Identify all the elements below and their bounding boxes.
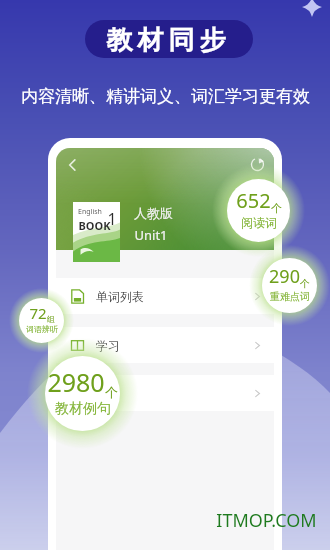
staticText: 290: [269, 264, 300, 289]
staticText: 学习: [96, 338, 120, 353]
staticText: 个: [105, 384, 118, 400]
staticText: 2980: [47, 365, 105, 399]
staticText: 652: [236, 187, 271, 214]
staticText: 单词列表: [96, 289, 144, 304]
staticText: Unit1: [134, 226, 168, 244]
staticText: BOOK: [78, 218, 111, 233]
staticText: 72: [29, 303, 47, 323]
button[interactable]: 单词列表: [70, 278, 262, 314]
button[interactable]: Refresh: [250, 157, 265, 172]
button[interactable]: 2980: [27, 338, 138, 449]
staticText: 词语辨听: [26, 324, 58, 334]
button[interactable]: 教材同步: [85, 20, 253, 58]
staticText: 人教版: [134, 205, 173, 221]
button[interactable]: Back: [64, 157, 80, 173]
button[interactable]: 652: [212, 164, 305, 257]
button[interactable]: 290: [249, 245, 330, 326]
button[interactable]: 学习: [70, 327, 262, 363]
button[interactable]: 72: [9, 288, 74, 353]
staticText: 内容清晰、精讲词义、词汇学习更有效: [21, 86, 310, 107]
staticText: 个: [300, 277, 310, 290]
button[interactable]: [70, 375, 262, 411]
staticText: 教材同步: [104, 24, 228, 57]
staticText: English: [78, 207, 102, 217]
staticText: 重难点词: [270, 290, 310, 303]
staticText: 教材例句: [55, 400, 111, 418]
staticText: 组: [47, 314, 55, 324]
staticText: 个: [271, 201, 282, 215]
staticText: 1: [107, 208, 117, 230]
staticText: ITMOP.COM: [216, 508, 317, 533]
staticText: 阅读词: [241, 215, 277, 230]
